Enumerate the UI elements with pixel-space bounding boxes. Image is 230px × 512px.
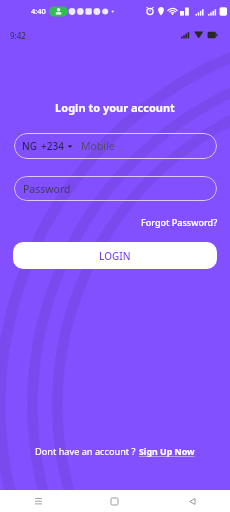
button[interactable]: NG	[14, 133, 217, 159]
staticText: NG	[22, 139, 38, 153]
button[interactable]: Home	[76, 490, 153, 512]
button[interactable]: Forgot Password?	[141, 214, 230, 230]
staticText: LOGIN	[99, 249, 131, 263]
button[interactable]: Password	[14, 176, 217, 201]
button[interactable]: Sign Up Now	[139, 446, 195, 458]
staticText: Password	[23, 182, 71, 196]
staticText: 9:42	[10, 30, 26, 41]
button[interactable]: Back	[153, 490, 230, 512]
button[interactable]: LOGIN	[13, 242, 217, 269]
staticText: Mobile	[81, 139, 115, 153]
staticText: 4:40	[31, 6, 46, 16]
staticText: Login to your account	[0, 100, 230, 115]
staticText: +234	[41, 139, 64, 153]
button[interactable]: Recents	[0, 490, 76, 512]
staticText: Dont have an account ?	[35, 445, 136, 458]
